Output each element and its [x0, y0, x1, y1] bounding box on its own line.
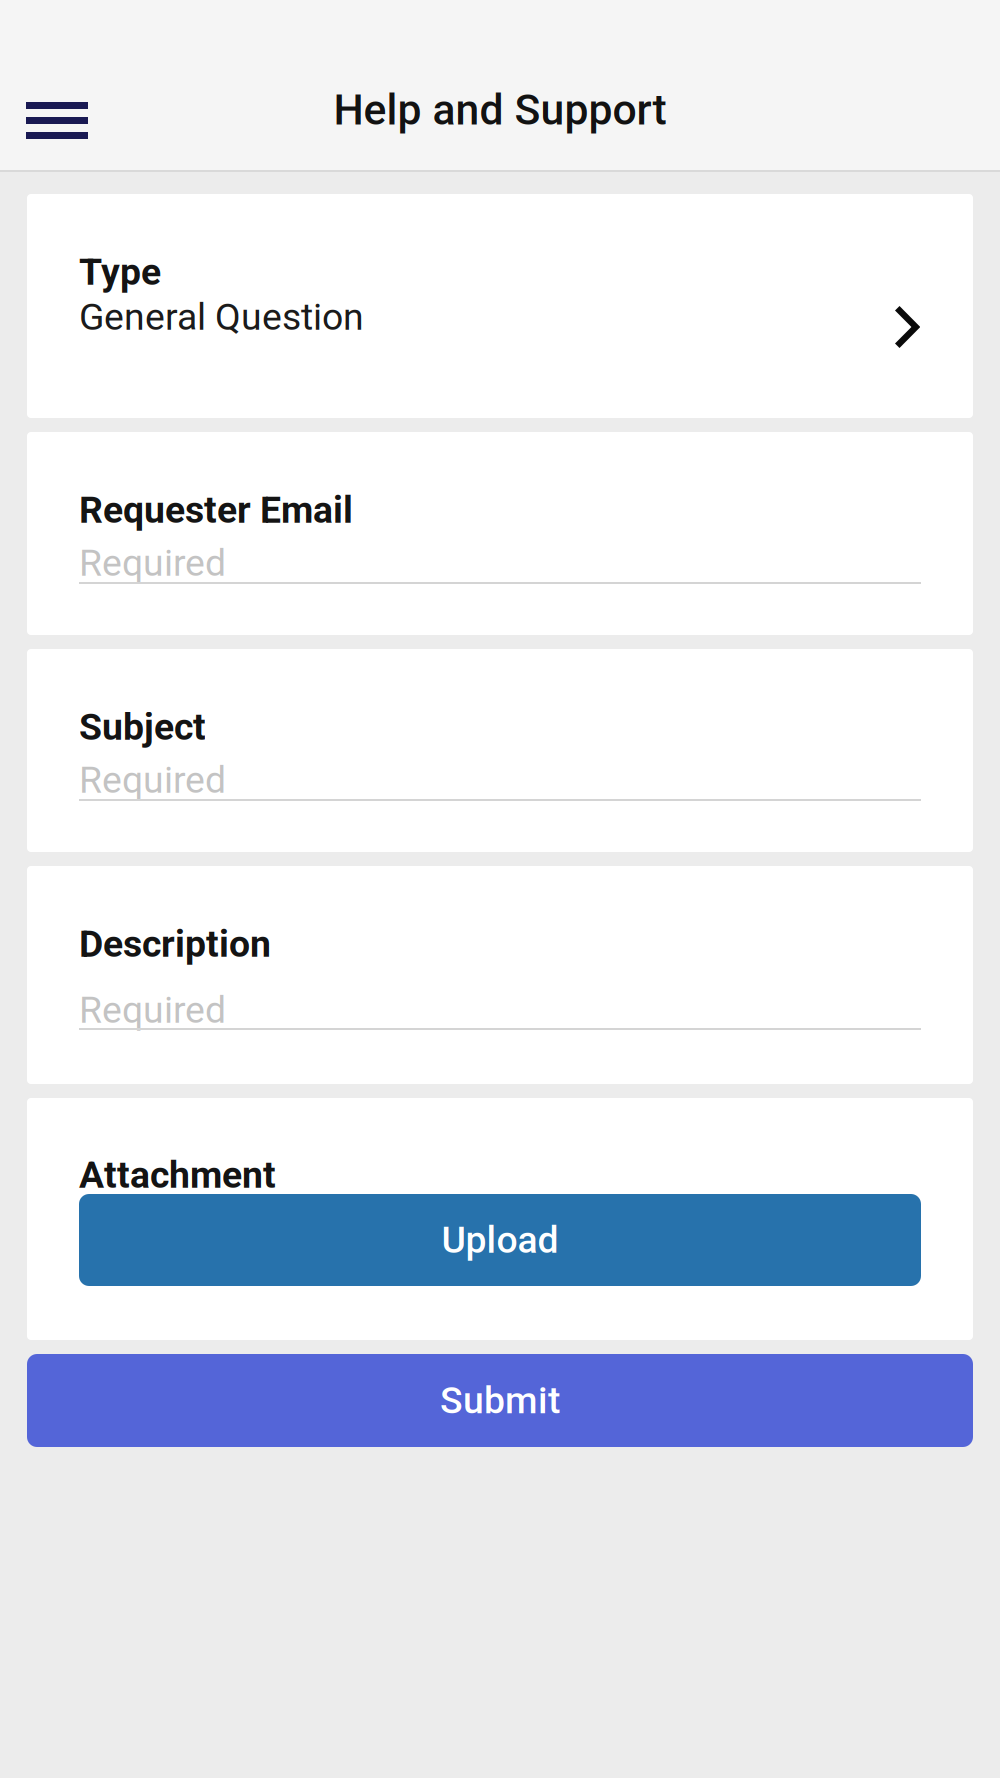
button[interactable]: Submit — [27, 1354, 973, 1447]
staticText: Attachment — [79, 1153, 276, 1197]
staticText: Requester Email — [79, 488, 353, 532]
button[interactable]: Menu — [0, 82, 122, 159]
staticText: General Question — [79, 295, 364, 339]
staticText: Upload — [441, 1218, 558, 1262]
staticText: Description — [79, 922, 271, 966]
button[interactable]: Upload — [79, 1194, 921, 1286]
staticText: Type — [79, 250, 161, 294]
staticText: Required — [79, 758, 226, 802]
staticText: Help and Support — [333, 85, 666, 135]
staticText: Required — [79, 541, 226, 585]
staticText: Subject — [79, 705, 206, 749]
button[interactable]: Type — [27, 194, 973, 418]
staticText: Submit — [440, 1379, 560, 1422]
staticText: Required — [79, 988, 226, 1032]
